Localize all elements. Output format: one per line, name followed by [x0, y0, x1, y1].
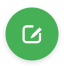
button[interactable]: Compose: [5, 7, 58, 60]
